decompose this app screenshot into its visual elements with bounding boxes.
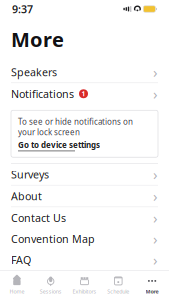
button[interactable]: Go to device settings xyxy=(18,139,100,151)
button[interactable]: Schedule xyxy=(101,275,135,296)
staticText: Exhibitors xyxy=(72,288,96,295)
staticText: Notifications xyxy=(11,87,74,101)
staticText: Home xyxy=(9,288,24,295)
button[interactable]: About xyxy=(0,186,169,207)
button[interactable]: Exhibitors xyxy=(68,275,101,296)
staticText: To see or hide notifications on your loc… xyxy=(18,116,133,137)
staticText: › xyxy=(153,208,158,228)
staticText: About xyxy=(11,189,42,203)
button[interactable]: FAQ xyxy=(0,249,169,270)
staticText: › xyxy=(153,62,158,82)
staticText: Schedule xyxy=(107,288,129,295)
staticText: Contact Us xyxy=(11,211,66,225)
staticText: Go to device settings xyxy=(18,139,100,150)
staticText: 9:37 xyxy=(12,2,33,16)
button[interactable]: Speakers xyxy=(0,62,169,83)
button[interactable]: Contact Us xyxy=(0,207,169,228)
staticText: › xyxy=(153,229,158,249)
button[interactable]: Home xyxy=(0,275,34,296)
button[interactable]: More xyxy=(135,275,169,296)
staticText: › xyxy=(153,165,158,184)
button[interactable]: Sessions xyxy=(34,275,68,296)
staticText: › xyxy=(153,84,158,103)
staticText: More xyxy=(146,288,159,295)
staticText: FAQ xyxy=(11,253,31,267)
button[interactable]: Convention Map xyxy=(0,228,169,249)
staticText: › xyxy=(153,250,158,270)
staticText: Speakers xyxy=(11,65,57,79)
staticText: More xyxy=(11,26,64,53)
staticText: 1 xyxy=(81,89,85,98)
staticText: Convention Map xyxy=(11,232,95,246)
staticText: › xyxy=(153,186,158,206)
button[interactable]: Notifications xyxy=(0,83,169,104)
staticText: Surveys xyxy=(11,167,49,181)
staticText: Sessions xyxy=(40,288,62,295)
button[interactable]: Surveys xyxy=(0,164,169,185)
